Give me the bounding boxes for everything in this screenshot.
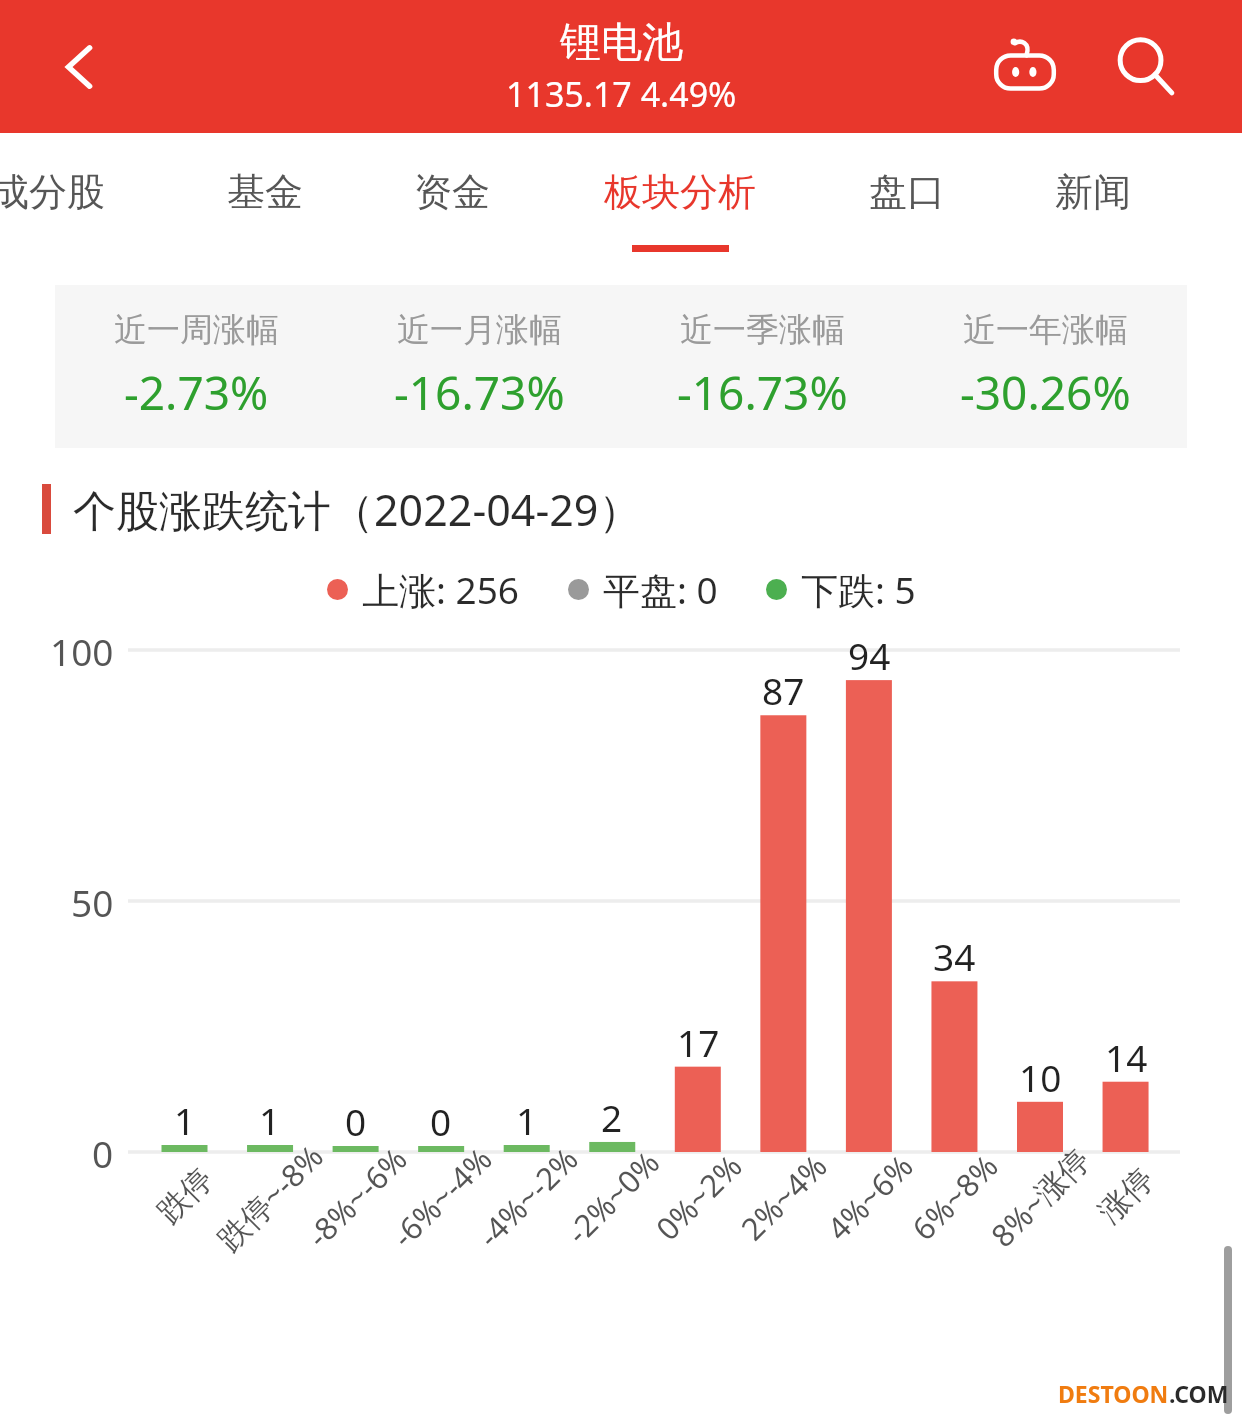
- button[interactable]: 上涨: 256: [327, 564, 520, 615]
- staticText: 成分股: [0, 168, 105, 216]
- staticText: 8%~涨停: [981, 1138, 1099, 1256]
- staticText: -16.73%: [677, 361, 848, 424]
- staticText: 87: [762, 665, 805, 715]
- button[interactable]: Search: [1096, 17, 1196, 117]
- staticText: 0: [430, 1096, 452, 1146]
- staticText: 近一月涨幅: [397, 309, 562, 351]
- staticText: 上涨: 256: [362, 564, 520, 615]
- staticText: 1: [259, 1095, 281, 1145]
- button[interactable]: 平盘: 0: [568, 564, 718, 615]
- staticText: 近一年涨幅: [963, 309, 1128, 351]
- staticText: -6%~-4%: [382, 1138, 501, 1256]
- staticText: 跌停: [149, 1160, 221, 1231]
- staticText: 跌停~-8%: [208, 1135, 332, 1259]
- staticText: 50: [71, 877, 114, 927]
- button[interactable]: 成分股: [0, 159, 111, 225]
- staticText: 平盘: 0: [603, 564, 718, 615]
- button[interactable]: 板块分析: [596, 159, 764, 225]
- staticText: 1: [174, 1095, 196, 1145]
- staticText: 94: [848, 630, 891, 680]
- staticText: 1: [516, 1095, 538, 1145]
- staticText: 基金: [227, 168, 303, 216]
- staticText: .COM: [1169, 1378, 1229, 1409]
- staticText: 4%~6%: [817, 1145, 921, 1249]
- staticText: 2%~4%: [731, 1145, 835, 1249]
- staticText: 下跌: 5: [801, 564, 916, 615]
- staticText: 0: [92, 1128, 114, 1178]
- button[interactable]: 下跌: 5: [766, 564, 916, 615]
- button[interactable]: 盘口: [865, 159, 949, 225]
- staticText: 涨停: [1090, 1160, 1162, 1231]
- button[interactable]: AI assistant: [975, 17, 1075, 117]
- staticText: 0%~2%: [646, 1145, 750, 1249]
- staticText: 板块分析: [604, 168, 756, 216]
- staticText: 14: [1105, 1032, 1148, 1082]
- staticText: 锂电池: [560, 17, 683, 69]
- staticText: -4%~-2%: [468, 1138, 587, 1256]
- staticText: 近一周涨幅: [114, 309, 279, 351]
- staticText: -2.73%: [124, 361, 269, 424]
- staticText: DESTOON: [1058, 1378, 1169, 1409]
- button[interactable]: 资金: [410, 159, 494, 225]
- staticText: 34: [933, 931, 976, 981]
- staticText: 6%~8%: [902, 1145, 1006, 1249]
- staticText: 17: [677, 1017, 720, 1067]
- staticText: -8%~-6%: [297, 1138, 416, 1256]
- staticText: 资金: [414, 168, 490, 216]
- staticText: -30.26%: [960, 361, 1131, 424]
- staticText: 100: [50, 626, 114, 676]
- staticText: 个股涨跌统计（2022-04-29）: [73, 480, 642, 539]
- staticText: -16.73%: [394, 361, 565, 424]
- staticText: 新闻: [1055, 168, 1131, 216]
- button[interactable]: Back: [42, 29, 118, 105]
- staticText: 2: [601, 1092, 623, 1142]
- staticText: 0: [345, 1096, 367, 1146]
- staticText: 盘口: [869, 168, 945, 216]
- staticText: 1135.17 4.49%: [506, 71, 737, 117]
- staticText: 10: [1019, 1052, 1062, 1102]
- button[interactable]: 基金: [223, 159, 307, 225]
- staticText: -2%~0%: [557, 1141, 668, 1252]
- staticText: 近一季涨幅: [680, 309, 845, 351]
- button[interactable]: 新闻: [1051, 159, 1135, 225]
